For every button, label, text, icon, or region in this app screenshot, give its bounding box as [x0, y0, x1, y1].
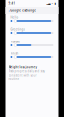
- staticText: ▂▄ ⌁ ▮: [46, 2, 55, 5]
- staticText: ‹: [8, 8, 9, 13]
- staticText: 9:41: [8, 2, 15, 5]
- staticText: Hello: [11, 16, 19, 19]
- staticText: Weight loss journey: [8, 65, 36, 69]
- staticText: Google exchange: [10, 9, 36, 12]
- staticText: consistent with your routine: [8, 74, 36, 81]
- staticText: Finish: [11, 52, 19, 55]
- staticText: Greetings: [11, 28, 25, 31]
- staticText: Reviews: [11, 40, 20, 43]
- staticText: Track progress daily and stay: [8, 69, 44, 73]
